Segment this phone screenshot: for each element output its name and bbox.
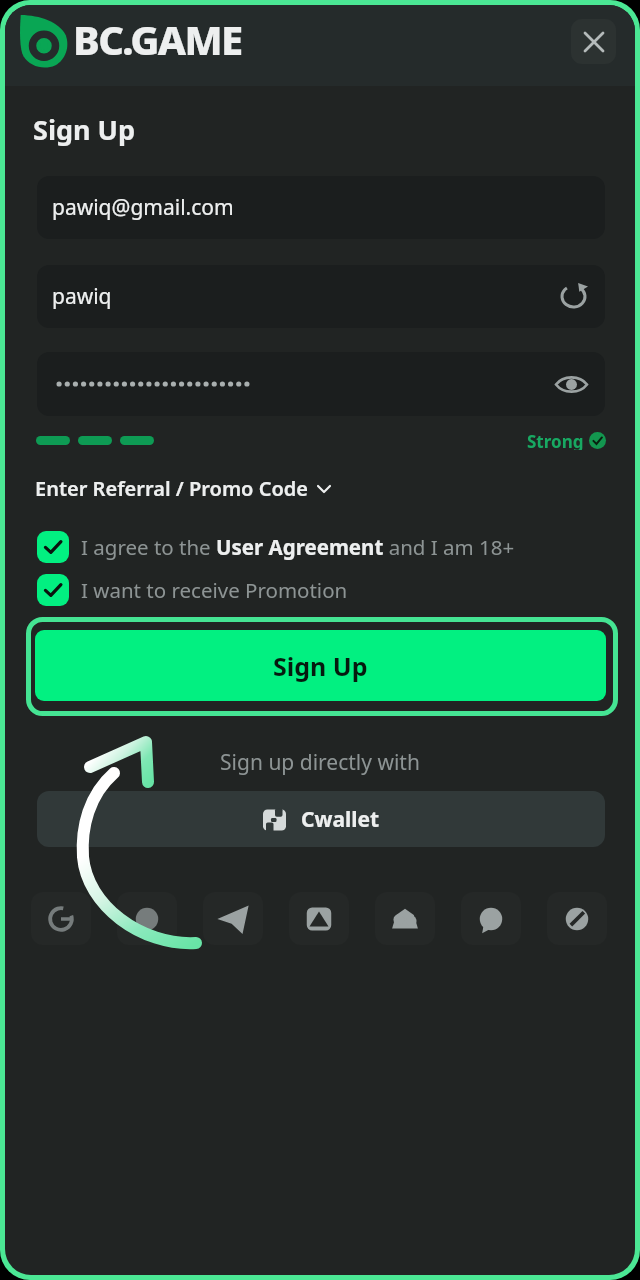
button[interactable]: pawiq [37,265,605,328]
button[interactable]: I agree to the User Agreement and I am 1… [37,530,606,563]
button[interactable]: Line [461,892,521,945]
staticText: Enter Referral / Promo Code [35,475,308,502]
button[interactable]: Twitch [547,892,607,945]
staticText: BC.GAME [73,12,242,66]
button[interactable]: Metamask [375,892,435,945]
button[interactable]: Sign Up [35,630,606,701]
button[interactable] [37,352,605,416]
staticText: pawiq [52,282,112,311]
button[interactable]: I want to receive Promotion [37,573,606,606]
staticText: pawiq@gmail.com [52,193,234,222]
staticText: Sign Up [273,649,368,683]
button[interactable]: Close [571,19,616,64]
staticText: I want to receive Promotion [81,576,348,604]
button[interactable]: Telegram [203,892,263,945]
staticText: I agree to the User Agreement and I am 1… [81,533,515,561]
button[interactable]: Cwallet [37,791,605,847]
button[interactable]: Google [31,892,91,945]
button[interactable]: pawiq@gmail.com [37,176,605,239]
staticText: Sign up directly with [5,748,635,777]
staticText: Sign Up [33,111,136,148]
button[interactable]: Facebook [117,892,177,945]
staticText: Cwallet [301,805,380,834]
staticText: Strong [527,430,584,450]
button[interactable]: Steam [289,892,349,945]
button[interactable]: Enter Referral / Promo Code [35,475,331,502]
